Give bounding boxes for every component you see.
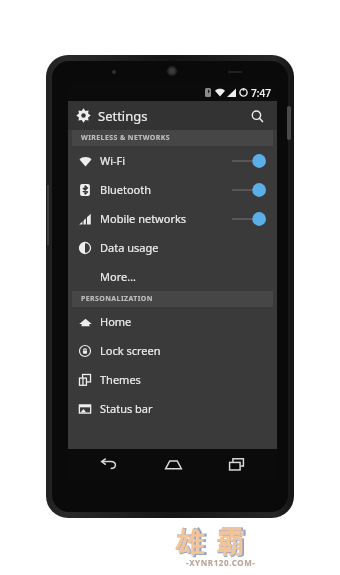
staticText: -XYNR120.COM- (186, 557, 256, 568)
button[interactable]: Bluetooth (68, 175, 277, 204)
button[interactable]: Wi-Fi (68, 146, 277, 175)
button[interactable]: Recent apps (214, 450, 258, 478)
staticText: 7:47 (251, 86, 271, 100)
staticText: Themes (100, 372, 141, 387)
button[interactable]: Back (87, 450, 131, 478)
staticText: PERSONALIZATION (81, 294, 153, 304)
button[interactable]: Search (246, 105, 268, 127)
staticText: Status bar (100, 401, 153, 416)
staticText: Bluetooth (100, 182, 152, 197)
staticText: Wi-Fi (100, 153, 126, 168)
button[interactable]: Mobile networks (68, 204, 277, 233)
staticText: WIRELESS & NETWORKS (81, 133, 171, 143)
button[interactable]: Themes (68, 365, 277, 394)
button[interactable] (232, 211, 266, 227)
button[interactable] (232, 153, 266, 169)
staticText: More… (100, 269, 136, 284)
button[interactable]: Status bar (68, 394, 277, 423)
button[interactable]: More… (68, 262, 277, 291)
button[interactable]: Lock screen (68, 336, 277, 365)
button[interactable]: Home (151, 450, 195, 478)
staticText: Data usage (100, 240, 159, 255)
staticText: 雄 (176, 525, 204, 560)
button[interactable]: Settings (68, 101, 277, 130)
staticText: Home (100, 314, 132, 329)
staticText: 霸 (216, 524, 246, 562)
staticText: 雄 (176, 524, 206, 562)
button[interactable] (232, 182, 266, 198)
staticText: Lock screen (100, 343, 161, 358)
staticText: 霸 (216, 525, 244, 560)
staticText: Settings (98, 107, 148, 125)
button[interactable]: Data usage (68, 233, 277, 262)
button[interactable]: Home (68, 307, 277, 336)
staticText: Mobile networks (100, 211, 187, 226)
